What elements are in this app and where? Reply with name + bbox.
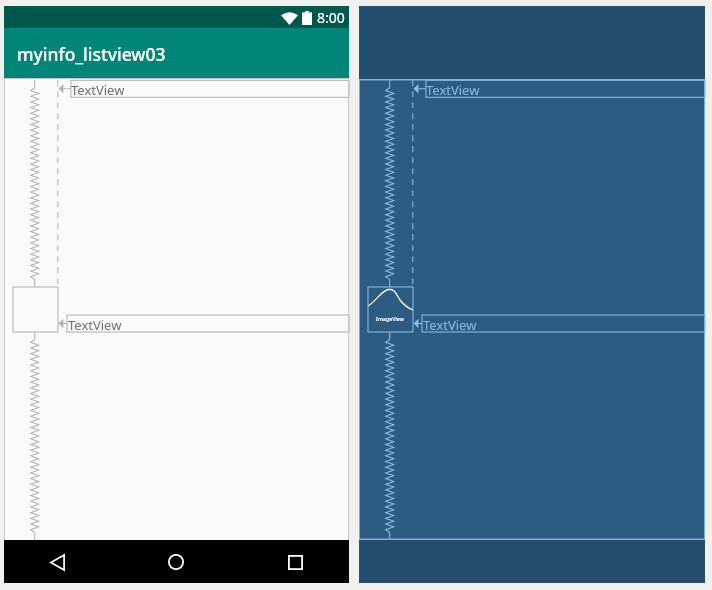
staticText: 8:00 xyxy=(317,8,345,27)
button[interactable]: Recents xyxy=(277,544,313,580)
staticText: TextView xyxy=(423,316,477,334)
staticText: myinfo_listview03 xyxy=(17,42,166,66)
button[interactable]: myinfo_listview03 xyxy=(4,28,349,79)
staticText: TextView xyxy=(68,316,122,334)
staticText: TextView xyxy=(71,81,125,99)
button[interactable]: Home xyxy=(158,544,194,580)
button[interactable]: Back xyxy=(39,544,75,580)
staticText: ImageView xyxy=(376,315,405,322)
staticText: TextView xyxy=(426,81,480,99)
